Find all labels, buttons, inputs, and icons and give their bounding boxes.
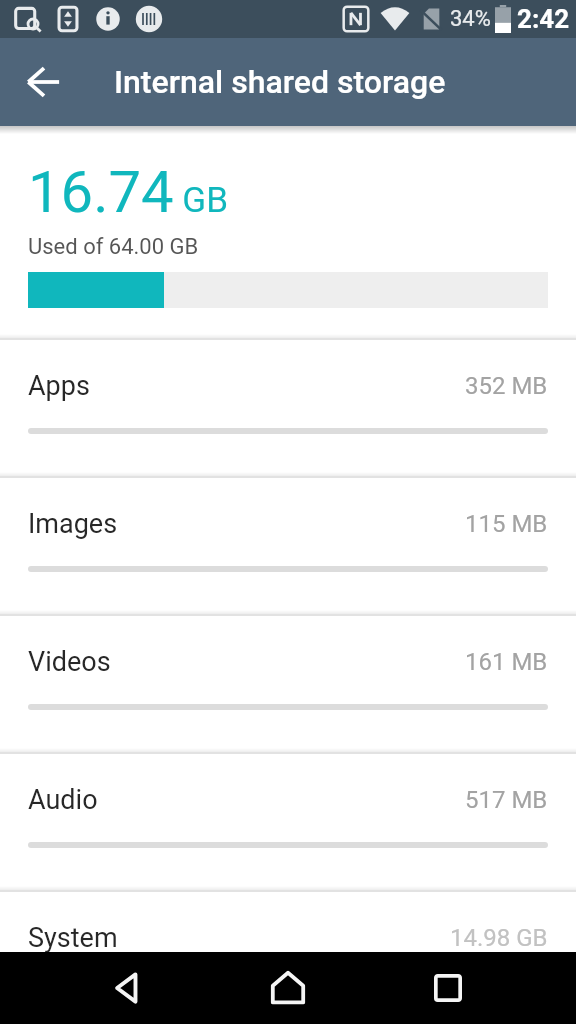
staticText: Apps [28,370,90,402]
staticText: Used of 64.00 GB [28,234,199,260]
staticText: 161 MB [465,648,548,676]
button[interactable] [0,38,88,126]
staticText: 2:42 [517,4,570,34]
button[interactable] [368,952,528,1024]
staticText: Videos [28,646,111,678]
staticText: Internal shared storage [114,63,446,101]
button[interactable]: Apps [0,334,576,472]
button[interactable]: Audio [0,748,576,886]
staticText: Images [28,508,118,540]
staticText: System [28,922,118,954]
button[interactable]: Images [0,472,576,610]
staticText: 517 MB [465,786,548,814]
button[interactable]: Videos [0,610,576,748]
staticText: 34% [450,6,491,32]
staticText: 16.74 GB [28,158,229,226]
staticText: Audio [28,784,98,816]
staticText: 14.98 GB [450,924,548,952]
button[interactable] [48,952,208,1024]
staticText: 352 MB [465,372,548,400]
button[interactable]: System [0,886,576,1024]
staticText: 115 MB [465,510,548,538]
button[interactable] [208,952,368,1024]
